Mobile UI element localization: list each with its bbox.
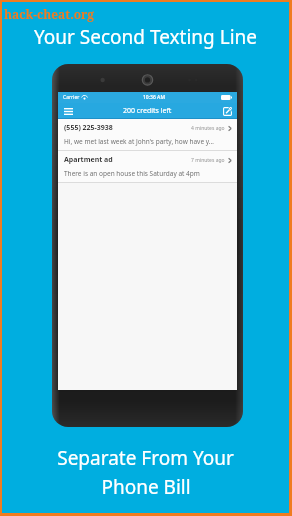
staticText: There is an open house this Saturday at … xyxy=(64,169,200,178)
staticText: 200 credits left xyxy=(123,106,172,116)
staticText: Separate From Your xyxy=(57,445,234,471)
staticText: hack-cheat.org xyxy=(4,6,95,22)
staticText: Hi, we met last week at John's party, ho… xyxy=(64,137,214,146)
staticText: 10:36 AM xyxy=(143,94,165,101)
staticText: Phone Bill xyxy=(101,474,191,500)
staticText: 4 minutes ago xyxy=(191,125,225,132)
button[interactable]: Apartment ad xyxy=(58,151,237,182)
staticText: (555) 225-3938 xyxy=(64,123,113,133)
staticText: 7 minutes ago xyxy=(191,157,225,164)
button[interactable]: (555) 225-3938 xyxy=(58,119,237,150)
staticText: Apartment ad xyxy=(64,155,113,165)
button[interactable]: Compose new message xyxy=(220,104,234,118)
staticText: Your Second Texting Line xyxy=(2,24,289,50)
staticText: Carrier xyxy=(63,94,80,101)
button[interactable]: Menu xyxy=(61,104,75,118)
